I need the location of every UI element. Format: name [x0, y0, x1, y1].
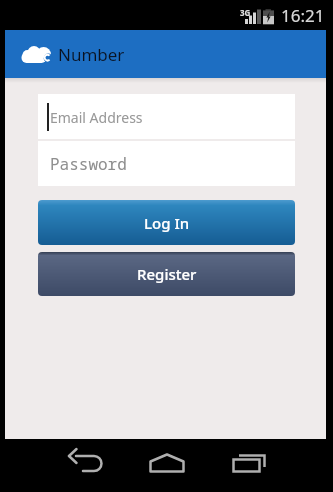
button[interactable]: Password	[38, 141, 295, 186]
button[interactable]	[219, 439, 279, 492]
button[interactable]: Number	[5, 30, 326, 78]
button[interactable]	[55, 439, 115, 492]
staticText: Number	[58, 43, 125, 66]
staticText: Register	[137, 264, 197, 284]
staticText: Password	[50, 153, 127, 175]
staticText: 3G	[240, 7, 251, 18]
button[interactable]: Register	[38, 252, 295, 296]
button[interactable]: Log In	[38, 200, 295, 245]
button[interactable]	[137, 439, 197, 492]
staticText: Email Address	[50, 108, 143, 127]
button[interactable]: Email Address	[38, 94, 295, 139]
staticText: 16:21	[281, 4, 325, 27]
staticText: Log In	[144, 213, 190, 233]
